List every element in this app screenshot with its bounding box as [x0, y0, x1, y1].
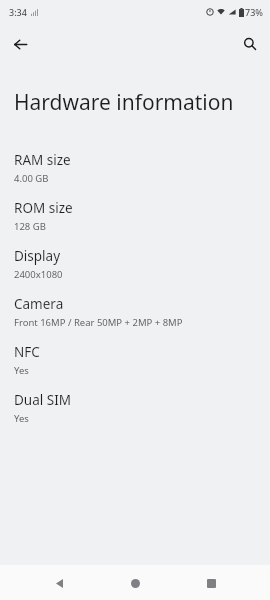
staticText: Camera	[14, 295, 64, 313]
staticText: Hardware information	[14, 88, 234, 117]
staticText: Yes	[14, 412, 29, 425]
button[interactable]: ROM size	[0, 192, 270, 240]
staticText: Front 16MP / Rear 50MP + 2MP + 8MP	[14, 316, 183, 329]
staticText: 4.00 GB	[14, 172, 49, 185]
staticText: Display	[14, 247, 61, 265]
button[interactable]: Search	[236, 30, 264, 58]
staticText: 73%	[245, 6, 263, 18]
button[interactable]: Display	[0, 240, 270, 288]
button[interactable]: Dual SIM	[0, 384, 270, 432]
staticText: RAM size	[14, 151, 71, 169]
staticText: 128 GB	[14, 220, 46, 233]
staticText: 3:34	[9, 6, 27, 18]
button[interactable]: Back	[6, 30, 34, 58]
staticText: NFC	[14, 343, 40, 361]
staticText: Yes	[14, 364, 29, 377]
button[interactable]: Home	[118, 566, 152, 600]
button[interactable]: Back	[42, 566, 76, 600]
staticText: 2400x1080	[14, 268, 63, 281]
button[interactable]: RAM size	[0, 144, 270, 192]
button[interactable]: Recents	[194, 566, 228, 600]
staticText: ROM size	[14, 199, 73, 217]
staticText: Dual SIM	[14, 391, 71, 409]
button[interactable]: NFC	[0, 336, 270, 384]
button[interactable]: Camera	[0, 288, 270, 336]
